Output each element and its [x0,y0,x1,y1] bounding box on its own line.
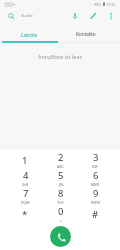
staticText: 4 [23,169,29,182]
staticText: 90% [94,2,102,7]
staticText: 3 [93,151,99,164]
staticText: Anrufliste ist leer. [38,53,83,60]
staticText: MNO [91,182,100,187]
button[interactable]: 5 [43,169,78,187]
staticText: WXYZ [91,200,101,205]
button[interactable]: Call [50,226,71,247]
button[interactable]: More options [102,8,120,24]
button[interactable]: 1 [7,151,43,169]
button[interactable]: 4 [7,169,43,187]
staticText: 1 [22,154,28,167]
button[interactable]: Voice search [66,8,84,24]
button[interactable]: Kontakte [59,31,113,41]
button[interactable]: 8 [43,187,78,205]
staticText: 2 [58,151,64,164]
button[interactable]: 2 [43,151,78,169]
staticText: 9 [93,187,99,200]
button[interactable]: 9 [78,187,113,205]
staticText: # [92,208,99,221]
button[interactable]: # [78,205,113,223]
button[interactable]: 3 [78,151,113,169]
staticText: 5 [58,169,64,182]
staticText: 0 [58,205,64,218]
staticText: Letzte [21,31,38,38]
staticText: Suche [21,13,33,19]
staticText: * [22,208,28,221]
button[interactable]: Letzte [0,31,59,41]
staticText: PQRS [21,200,30,205]
staticText: 17:32 [106,2,116,7]
button[interactable]: 7 [7,187,43,205]
staticText: TUV [57,200,64,205]
button[interactable]: Edit [84,8,102,24]
button[interactable]: 6 [78,169,113,187]
staticText: GHI [22,182,29,187]
staticText: 7 [23,187,29,200]
staticText: JKL [59,182,64,187]
staticText: + [60,218,62,223]
staticText: DEF [92,164,99,169]
button[interactable]: 0 [43,205,78,223]
button[interactable]: * [7,205,43,223]
staticText: Kontakte [76,31,96,38]
staticText: 6 [93,169,99,182]
staticText: ABC [57,164,64,169]
other: Search [8,13,15,20]
staticText: 8 [58,187,64,200]
